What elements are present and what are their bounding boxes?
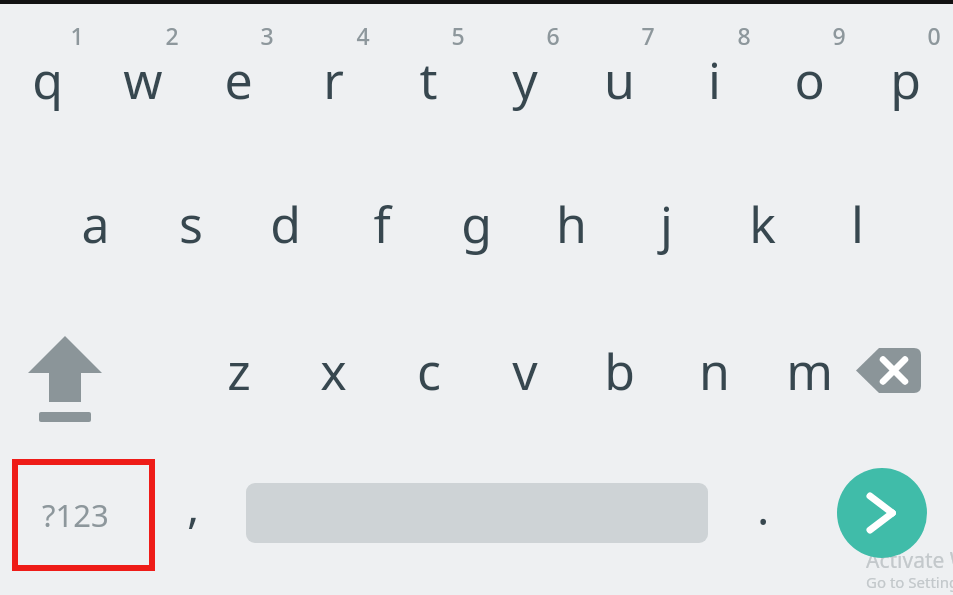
staticText: q <box>32 46 63 114</box>
staticText: Activate W <box>866 546 953 575</box>
staticText: c <box>417 337 441 405</box>
button[interactable] <box>334 158 429 292</box>
staticText: n <box>699 337 730 405</box>
staticText: 8 <box>737 20 751 51</box>
staticText: f <box>373 190 391 258</box>
button[interactable] <box>0 6 95 140</box>
button[interactable] <box>762 308 857 442</box>
staticText: 1 <box>70 20 84 51</box>
button[interactable] <box>477 6 572 140</box>
staticText: z <box>227 337 251 405</box>
staticText: 7 <box>641 20 655 51</box>
button[interactable] <box>477 308 572 442</box>
staticText: a <box>81 190 110 258</box>
button[interactable] <box>286 308 381 442</box>
staticText: m <box>786 337 833 405</box>
button[interactable] <box>524 158 619 292</box>
staticText: l <box>851 190 864 258</box>
staticText: h <box>556 190 587 258</box>
button[interactable] <box>191 6 286 140</box>
staticText: w <box>123 46 163 114</box>
button[interactable] <box>619 158 714 292</box>
button[interactable]: . <box>730 462 796 568</box>
staticText: g <box>461 190 492 258</box>
button[interactable] <box>572 6 667 140</box>
staticText: 4 <box>356 20 370 51</box>
staticText: 5 <box>451 20 465 51</box>
staticText: Go to Setting <box>866 572 953 592</box>
staticText: x <box>320 337 347 405</box>
button[interactable] <box>667 308 762 442</box>
staticText: 2 <box>165 20 179 51</box>
button[interactable]: Enter <box>837 468 927 558</box>
staticText: b <box>604 337 635 405</box>
staticText: 9 <box>832 20 846 51</box>
staticText: r <box>323 46 344 114</box>
button[interactable] <box>48 158 143 292</box>
staticText: p <box>890 46 921 114</box>
staticText: k <box>749 190 776 258</box>
button[interactable] <box>858 6 953 140</box>
staticText: 3 <box>260 20 274 51</box>
button[interactable] <box>667 6 762 140</box>
staticText: j <box>660 190 673 258</box>
staticText: d <box>270 190 301 258</box>
staticText: s <box>179 190 203 258</box>
button[interactable] <box>381 308 476 442</box>
staticText: , <box>187 474 200 537</box>
staticText: i <box>708 46 721 114</box>
button[interactable] <box>715 158 810 292</box>
button[interactable]: Shift <box>8 308 123 442</box>
button[interactable] <box>95 6 190 140</box>
button[interactable] <box>238 158 333 292</box>
button[interactable]: ?123 <box>15 462 152 568</box>
button[interactable] <box>572 308 667 442</box>
staticText: ?123 <box>42 494 109 536</box>
staticText: e <box>224 46 253 114</box>
staticText: 0 <box>927 20 941 51</box>
button[interactable]: , <box>158 462 228 568</box>
button[interactable] <box>429 158 524 292</box>
button[interactable] <box>810 158 905 292</box>
button[interactable] <box>381 6 476 140</box>
staticText: t <box>419 46 438 114</box>
staticText: . <box>757 476 770 539</box>
button[interactable] <box>143 158 238 292</box>
staticText: y <box>512 46 538 114</box>
button[interactable] <box>762 6 857 140</box>
staticText: 6 <box>546 20 560 51</box>
button[interactable]: Backspace <box>845 308 940 442</box>
staticText: o <box>794 46 825 114</box>
staticText: v <box>512 337 538 405</box>
button[interactable] <box>286 6 381 140</box>
staticText: u <box>604 46 635 114</box>
button[interactable] <box>191 308 286 442</box>
